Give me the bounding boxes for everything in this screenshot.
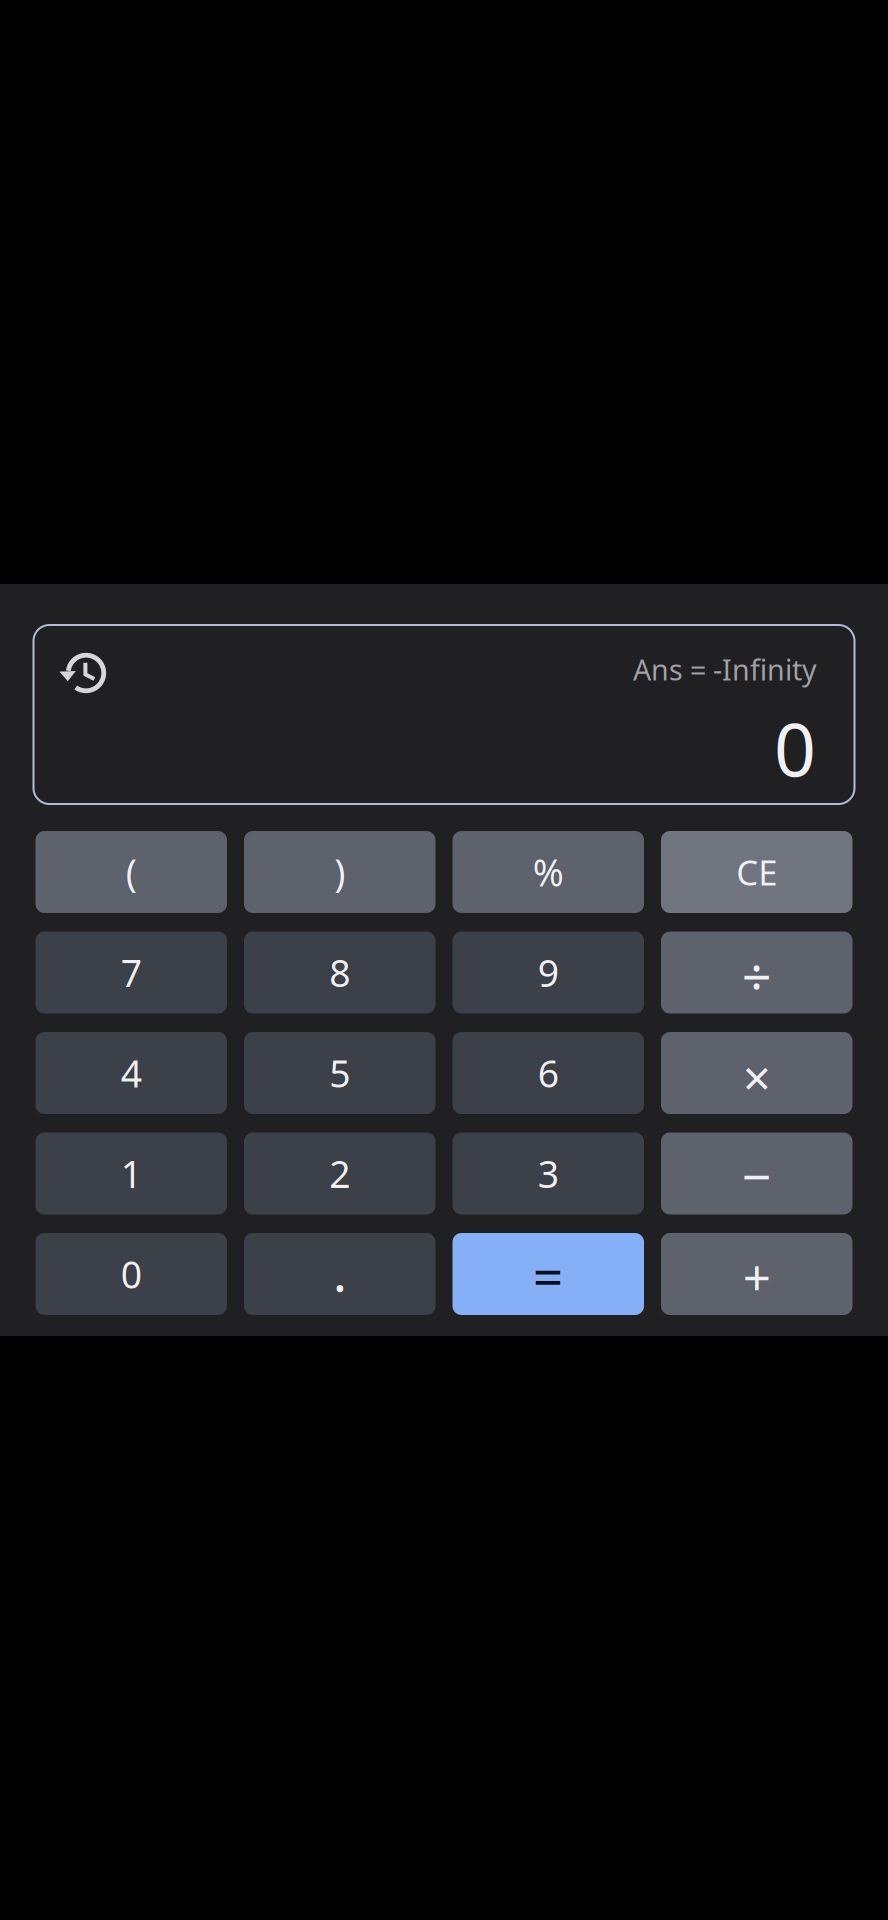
staticText: ÷ — [742, 941, 772, 1010]
staticText: × — [743, 1044, 771, 1110]
staticText: % — [533, 847, 564, 897]
staticText: 7 — [121, 948, 142, 997]
staticText: 9 — [538, 948, 559, 997]
staticText: 4 — [121, 1048, 142, 1098]
button[interactable]: 5 — [244, 1032, 435, 1114]
staticText: = — [533, 1241, 564, 1311]
staticText: 6 — [538, 1048, 559, 1098]
button[interactable]: History — [33, 647, 120, 699]
button[interactable]: 3 — [452, 1132, 644, 1214]
button[interactable]: 0 — [35, 1233, 227, 1315]
staticText: Ans = -Infinity — [633, 650, 817, 689]
button[interactable]: ÷ — [661, 931, 852, 1013]
staticText: 5 — [329, 1048, 350, 1098]
button[interactable]: = — [452, 1233, 644, 1315]
button[interactable]: − — [661, 1132, 852, 1214]
button[interactable]: 1 — [35, 1132, 227, 1214]
button[interactable]: 6 — [452, 1032, 644, 1114]
staticText: 0 — [774, 700, 816, 797]
button[interactable]: × — [661, 1032, 852, 1114]
staticText: CE — [736, 849, 777, 895]
button[interactable]: % — [452, 831, 644, 913]
staticText: 0 — [121, 1249, 142, 1299]
staticText: ) — [334, 847, 345, 897]
button[interactable]: 4 — [35, 1032, 227, 1114]
staticText: . — [333, 1236, 347, 1306]
button[interactable]: 7 — [35, 931, 227, 1013]
staticText: + — [743, 1243, 771, 1309]
button[interactable]: 9 — [452, 931, 644, 1013]
button[interactable]: ) — [244, 831, 435, 913]
staticText: ( — [126, 847, 137, 897]
button[interactable]: + — [661, 1233, 852, 1315]
button[interactable]: . — [244, 1233, 435, 1315]
staticText: 2 — [329, 1149, 350, 1198]
staticText: 1 — [121, 1149, 142, 1198]
staticText: 8 — [329, 948, 350, 997]
button[interactable]: 8 — [244, 931, 435, 1013]
button[interactable]: ( — [35, 831, 227, 913]
button[interactable]: CE — [661, 831, 852, 913]
staticText: − — [742, 1141, 772, 1210]
staticText: 3 — [538, 1149, 559, 1198]
button[interactable]: 2 — [244, 1132, 435, 1214]
